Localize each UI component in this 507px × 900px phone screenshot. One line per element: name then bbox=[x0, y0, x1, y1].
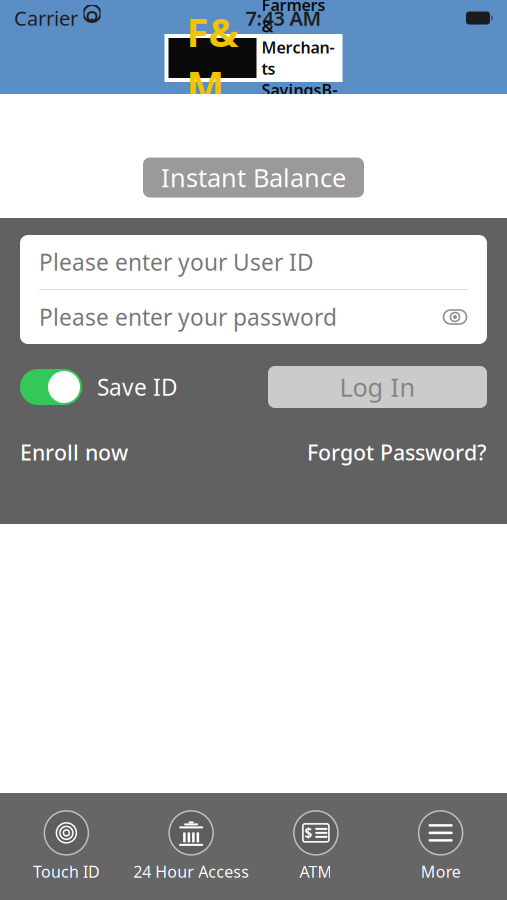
staticText: SavingsBank bbox=[261, 79, 337, 122]
staticText: F&M bbox=[186, 5, 238, 111]
staticText: Forgot Password? bbox=[307, 438, 487, 466]
staticText: Carrier bbox=[14, 5, 78, 31]
button[interactable]: $ bbox=[253, 805, 378, 888]
button[interactable]: Touch ID bbox=[4, 805, 129, 888]
staticText: ATM bbox=[299, 861, 332, 882]
staticText: Merchants bbox=[261, 37, 334, 79]
button[interactable]: 24 Hour Access bbox=[129, 805, 254, 888]
staticText: Log In bbox=[339, 370, 415, 404]
button[interactable]: Please enter your User ID bbox=[20, 235, 487, 289]
button[interactable]: Please enter your password bbox=[20, 290, 487, 344]
staticText: Enroll now bbox=[20, 438, 128, 466]
button[interactable]: Enroll now bbox=[20, 438, 128, 466]
staticText: Please enter your User ID bbox=[39, 247, 314, 277]
button[interactable]: Instant Balance bbox=[143, 157, 364, 197]
button[interactable]: Log In bbox=[268, 366, 487, 408]
staticText: Touch ID bbox=[33, 861, 100, 882]
staticText: More bbox=[421, 861, 461, 882]
staticText: Please enter your password bbox=[39, 302, 337, 332]
button[interactable]: More bbox=[378, 805, 503, 888]
staticText: 7:43 AM bbox=[245, 5, 321, 31]
staticText: Instant Balance bbox=[161, 161, 346, 194]
staticText: 24 Hour Access bbox=[133, 861, 249, 882]
button[interactable]: Save ID bbox=[20, 369, 178, 405]
staticText: $ bbox=[304, 824, 312, 842]
staticText: Farmers & bbox=[261, 0, 325, 37]
staticText: Save ID bbox=[97, 372, 178, 402]
button[interactable]: Forgot Password? bbox=[307, 438, 487, 466]
